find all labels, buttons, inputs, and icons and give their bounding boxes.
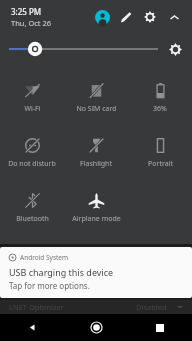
staticText: 3:25 PM — [11, 6, 42, 17]
button[interactable]: Bluetooth — [0, 180, 64, 235]
button[interactable]: Wi-Fi — [0, 70, 64, 125]
staticText: Wi-Fi — [24, 104, 41, 114]
button[interactable]: Portrait — [128, 125, 192, 180]
button[interactable]: Android System — [0, 247, 192, 298]
staticText: USB charging this device — [9, 266, 114, 278]
button[interactable]: User account — [90, 5, 114, 29]
button[interactable]: LNET Optimizer — [0, 300, 192, 314]
staticText: Disabled — [136, 302, 167, 312]
staticText: Portrait — [148, 159, 173, 169]
button[interactable]: Edit — [114, 5, 138, 29]
staticText: LNET Optimizer — [9, 302, 64, 312]
button[interactable]: Auto brightness — [164, 38, 186, 60]
button[interactable]: 36% — [128, 70, 192, 125]
button[interactable]: No SIM card — [64, 70, 128, 125]
staticText: Flashlight — [80, 159, 112, 169]
button[interactable]: Home — [64, 314, 128, 341]
button[interactable]: Collapse — [162, 5, 186, 29]
staticText: Bluetooth — [16, 214, 49, 224]
staticText: Android System — [20, 253, 69, 262]
staticText: Tap for more options. — [9, 280, 90, 291]
staticText: No SIM card — [76, 104, 117, 114]
button[interactable]: Settings — [138, 5, 162, 29]
button[interactable]: Airplane mode — [64, 180, 128, 235]
button[interactable]: Back — [0, 314, 64, 341]
staticText: Thu, Oct 26 — [11, 18, 52, 28]
button[interactable]: Recent apps — [128, 314, 192, 341]
button[interactable]: Flashlight — [64, 125, 128, 180]
staticText: Do not disturb — [8, 159, 56, 169]
button[interactable]: Brightness — [9, 36, 158, 62]
button[interactable]: Do not disturb — [0, 125, 64, 180]
staticText: 36% — [153, 104, 167, 114]
staticText: Airplane mode — [72, 214, 121, 224]
